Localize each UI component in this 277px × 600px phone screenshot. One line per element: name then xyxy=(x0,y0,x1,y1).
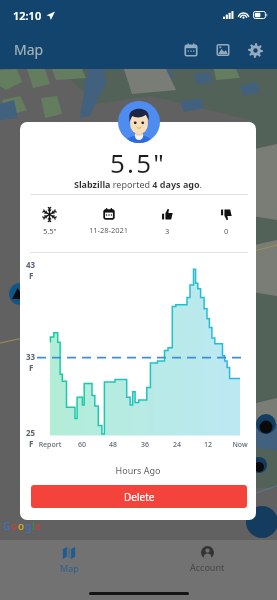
staticText: Delete xyxy=(124,490,155,504)
button[interactable]: Photos xyxy=(207,34,239,66)
staticText: g xyxy=(25,519,32,533)
staticText: Map xyxy=(60,562,79,574)
staticText: o xyxy=(11,519,18,533)
button[interactable]: Calendar xyxy=(175,34,207,66)
staticText: 43 xyxy=(26,259,36,270)
staticText: 3 xyxy=(165,226,170,236)
staticText: 33 xyxy=(26,351,36,362)
staticText: Hours Ago xyxy=(20,464,256,476)
staticText: F xyxy=(29,270,34,281)
staticText: 5.5" xyxy=(20,145,256,180)
staticText: 11-28-2021 xyxy=(89,225,129,235)
staticText: Now xyxy=(224,440,256,450)
staticText: 0 xyxy=(224,226,229,236)
staticText: 24 xyxy=(161,440,193,450)
button[interactable]: Delete xyxy=(31,485,247,508)
staticText: 36 xyxy=(129,440,161,450)
button[interactable]: Map xyxy=(0,540,138,576)
button[interactable]: Account xyxy=(138,540,277,576)
button[interactable]: Reporter avatar xyxy=(118,101,160,143)
button[interactable]: 3 xyxy=(138,208,197,236)
staticText: 60 xyxy=(66,440,98,450)
staticText: G xyxy=(3,519,11,533)
staticText: e xyxy=(35,519,41,533)
button[interactable]: 0 xyxy=(197,208,256,236)
button[interactable]: 11-28-2021 xyxy=(79,208,138,235)
staticText: 12:10 xyxy=(13,8,42,23)
staticText: Slabzilla reported 4 days ago. xyxy=(20,178,256,190)
staticText: 5.5" xyxy=(43,226,57,236)
staticText: 48 xyxy=(97,440,129,450)
staticText: 12 xyxy=(192,440,224,450)
staticText: Report xyxy=(34,440,66,450)
button[interactable]: 5.5" xyxy=(20,208,79,236)
staticText: 25 xyxy=(26,427,36,438)
staticText: F xyxy=(29,438,34,449)
staticText: F xyxy=(29,362,34,373)
staticText: Account xyxy=(190,561,225,573)
staticText: o xyxy=(18,519,25,533)
staticText: l xyxy=(32,519,35,533)
button[interactable]: Settings xyxy=(239,34,271,66)
staticText: Map xyxy=(14,40,44,59)
